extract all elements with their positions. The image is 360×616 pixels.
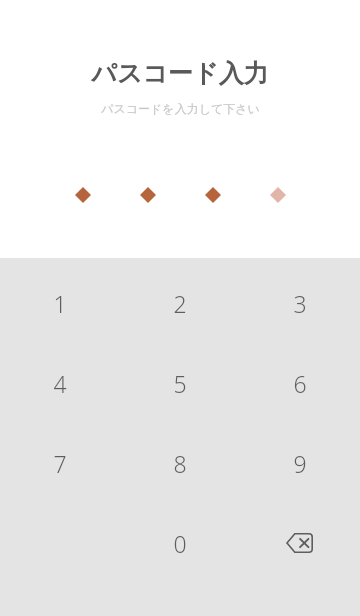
button[interactable]: 6 [240, 343, 360, 423]
staticText: 7 [53, 448, 67, 479]
button[interactable]: 0 [120, 503, 240, 583]
staticText: 0 [173, 528, 187, 559]
staticText: 4 [53, 368, 67, 399]
staticText: 3 [293, 288, 307, 319]
button[interactable]: 5 [120, 343, 240, 423]
button[interactable]: 3 [240, 263, 360, 343]
button[interactable]: 7 [0, 423, 120, 503]
staticText: パスコードを入力して下さい [101, 101, 260, 116]
staticText: 9 [293, 448, 307, 479]
button[interactable]: Backspace [240, 503, 360, 583]
button[interactable]: 1 [0, 263, 120, 343]
staticText: 5 [173, 368, 187, 399]
staticText: 6 [293, 368, 307, 399]
button[interactable]: 9 [240, 423, 360, 503]
staticText: 2 [173, 288, 187, 319]
staticText: パスコード入力 [91, 58, 269, 89]
button[interactable]: 4 [0, 343, 120, 423]
button[interactable]: 8 [120, 423, 240, 503]
button[interactable]: 2 [120, 263, 240, 343]
staticText: 1 [53, 288, 67, 319]
staticText: 8 [173, 448, 187, 479]
